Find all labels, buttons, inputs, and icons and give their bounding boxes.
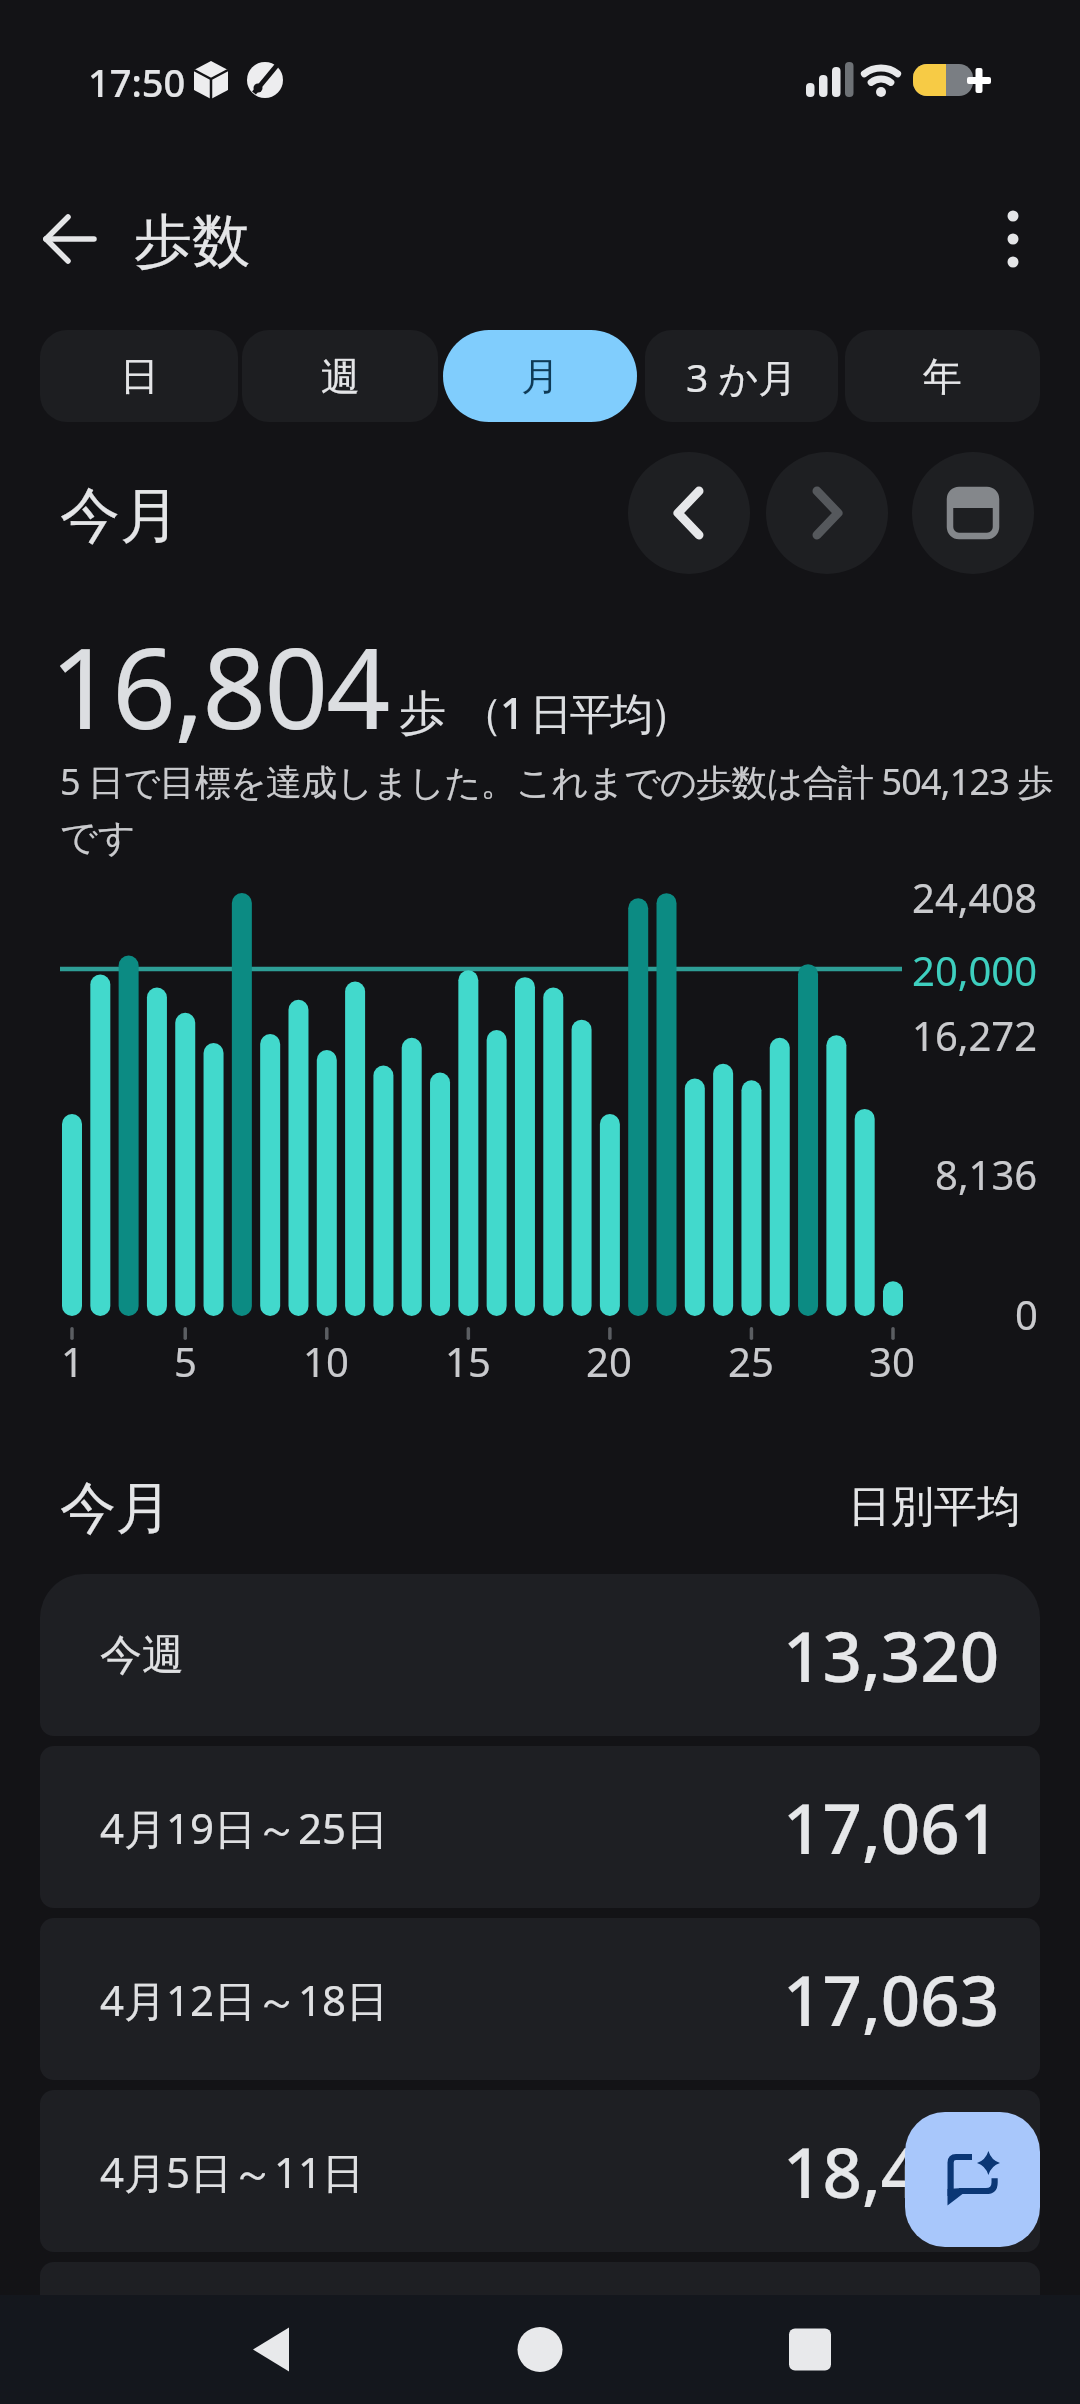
button[interactable]: 4月5日～11日 [40,2090,1040,2252]
button[interactable] [210,2295,330,2404]
button[interactable]: 月 [443,330,637,422]
button[interactable]: 年 [845,330,1040,422]
button[interactable] [766,452,888,574]
button[interactable] [905,2112,1040,2247]
staticText: 今月 [60,1473,172,1537]
staticText: 5 日で目標を達成しました。これまでの歩数は合計 504,123 歩 [60,757,1053,806]
staticText: 週 [321,352,360,401]
button[interactable] [970,196,1056,282]
staticText: 17,063 [783,1952,1000,2046]
staticText: 今月 [60,478,180,548]
staticText: 年 [923,352,962,401]
staticText: 18,406 [783,2124,1000,2218]
button[interactable]: 日 [40,330,238,422]
staticText: 4月5日～11日 [100,2143,365,2200]
button[interactable] [628,452,750,574]
button[interactable] [750,2295,870,2404]
button[interactable] [912,452,1034,574]
button[interactable]: 3 か月 [645,330,838,422]
button[interactable] [28,198,112,282]
button[interactable]: 4月12日～18日 [40,1918,1040,2080]
staticText: 4月12日～18日 [100,1971,389,2028]
staticText: 8,136 [935,1147,1038,1197]
staticText: 25 [728,1334,774,1384]
button[interactable]: 週 [242,330,438,422]
button[interactable]: 今週 [40,1574,1040,1736]
staticText: 日別平均 [848,1480,1020,1532]
staticText: 16,272 [912,1008,1038,1058]
staticText: 20 [586,1334,632,1384]
staticText: 17,061 [783,1780,1000,1874]
staticText: 10 [303,1334,349,1384]
staticText: 4月19日～25日 [100,1799,389,1856]
staticText: 0 [1015,1287,1038,1337]
staticText: 17:50 [88,56,186,104]
staticText: 16,804 [50,609,389,762]
staticText: 20,000 [912,943,1038,993]
staticText: 歩 [399,684,446,743]
staticText: 13,320 [783,1608,1000,1702]
staticText: 月 [521,352,560,401]
staticText: 15 [445,1334,491,1384]
staticText: 1 [61,1334,84,1384]
button[interactable] [40,2262,1040,2404]
staticText: 今週 [100,1629,184,1682]
staticText: 5 [174,1334,197,1384]
staticText: 歩数 [134,205,250,273]
button[interactable] [480,2295,600,2404]
staticText: （1 日平均） [460,683,690,742]
staticText: 日 [120,352,159,401]
staticText: 3 か月 [686,350,798,403]
staticText: 30 [869,1334,915,1384]
staticText: 24,408 [912,870,1038,920]
button[interactable]: 4月19日～25日 [40,1746,1040,1908]
staticText: です [60,814,136,861]
